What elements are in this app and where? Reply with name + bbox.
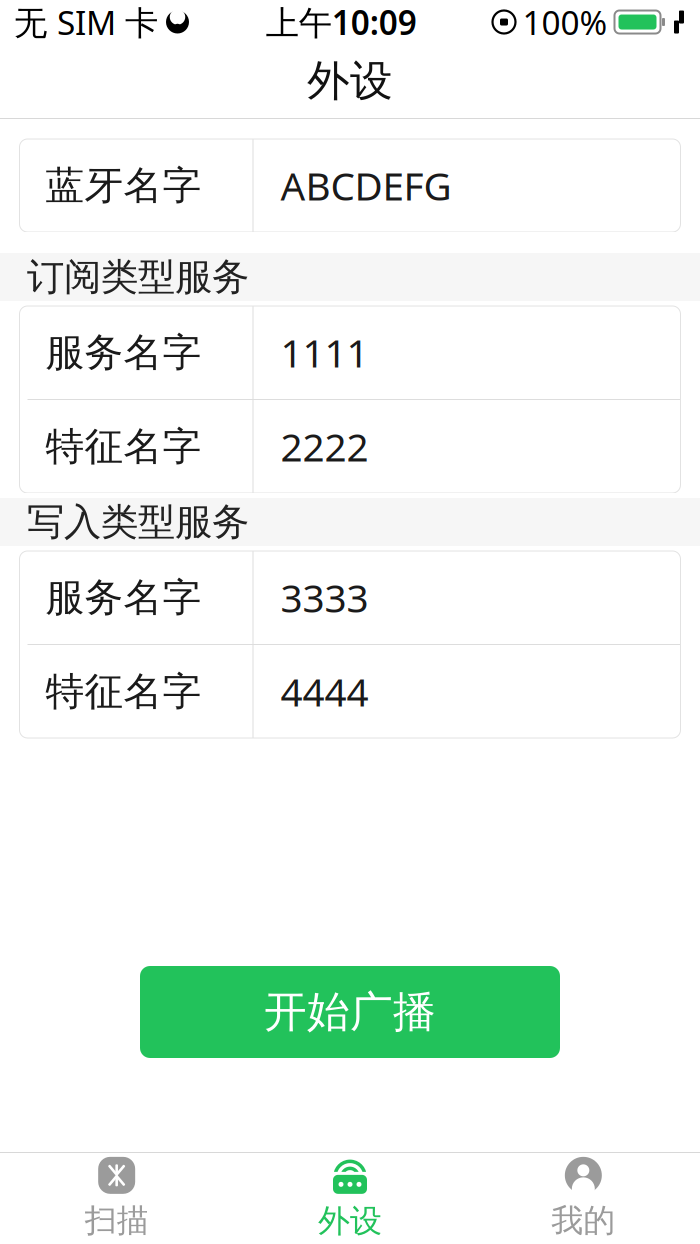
- staticText: 扫描: [85, 1201, 149, 1240]
- staticText: 服务名字: [45, 329, 201, 376]
- staticText: 外设: [318, 1201, 382, 1241]
- staticText: 服务名字: [45, 574, 201, 621]
- button[interactable]: 我的: [467, 1153, 700, 1244]
- staticText: 我的: [551, 1201, 615, 1240]
- staticText: 写入类型服务: [27, 499, 249, 545]
- staticText: ABCDEFG: [280, 160, 451, 211]
- staticText: 无 SIM 卡: [14, 0, 158, 44]
- staticText: 特征名字: [45, 668, 201, 715]
- staticText: 1111: [280, 327, 368, 378]
- staticText: 3333: [280, 572, 368, 623]
- staticText: 订阅类型服务: [27, 254, 249, 300]
- button[interactable]: 开始广播: [140, 966, 560, 1058]
- staticText: 外设: [307, 55, 393, 107]
- staticText: 特征名字: [45, 423, 201, 470]
- button[interactable]: 外设: [233, 1153, 467, 1244]
- staticText: 100%: [522, 0, 607, 44]
- staticText: 上午10:09: [266, 0, 417, 44]
- staticText: 蓝牙名字: [45, 162, 201, 209]
- staticText: 开始广播: [264, 986, 436, 1038]
- staticText: 2222: [280, 421, 368, 472]
- button[interactable]: 扫描: [0, 1153, 233, 1244]
- staticText: 4444: [280, 666, 368, 717]
